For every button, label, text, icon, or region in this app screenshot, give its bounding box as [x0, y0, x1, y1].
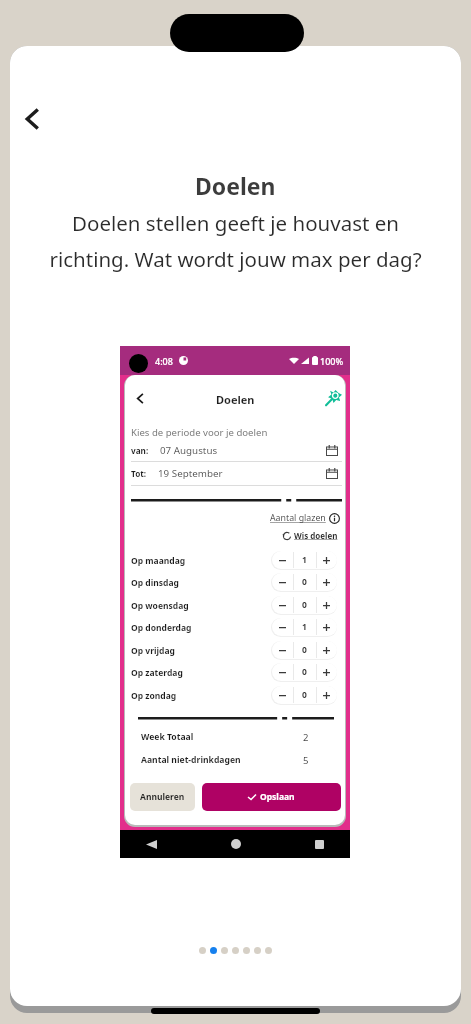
staticText: Doelen	[195, 170, 276, 201]
button[interactable]: Pin	[324, 388, 342, 406]
staticText: Annuleren	[140, 791, 185, 803]
button[interactable]: Increase Op dinsdag	[316, 573, 337, 591]
button[interactable]: Back	[133, 391, 147, 405]
staticText: 4:08	[155, 355, 173, 367]
other: Recents	[315, 840, 324, 849]
button[interactable]: Decrease Op zondag	[272, 686, 293, 704]
staticText: 0	[302, 666, 307, 678]
staticText: Tot:	[131, 468, 147, 479]
button[interactable]: Decrease Op dinsdag	[272, 573, 293, 591]
staticText: Doelen stellen geeft je houvast en richt…	[49, 209, 422, 273]
button[interactable]: Back	[13, 99, 53, 139]
staticText: Aantal glazen	[270, 512, 326, 524]
staticText: 1	[302, 621, 307, 633]
button[interactable]: Decrease Op zaterdag	[272, 663, 293, 681]
staticText: 1	[302, 554, 307, 566]
staticText: Op vrijdag	[131, 645, 175, 657]
button[interactable]: Annuleren	[130, 783, 195, 811]
staticText: 2	[303, 731, 309, 744]
staticText: Opslaan	[260, 791, 295, 803]
button[interactable]: Opslaan	[202, 783, 341, 811]
button[interactable]: Decrease Op woensdag	[272, 596, 293, 614]
staticText: 0	[302, 644, 307, 656]
button[interactable]: Increase Op donderdag	[316, 618, 337, 636]
staticText: Op maandag	[131, 555, 186, 567]
staticText: Aantal niet-drinkdagen	[141, 754, 241, 766]
staticText: Doelen	[216, 392, 255, 407]
button[interactable]: Increase Op zaterdag	[316, 663, 337, 681]
button[interactable]: Decrease Op donderdag	[272, 618, 293, 636]
staticText: 100%	[320, 355, 344, 367]
button[interactable]: Decrease Op maandag	[272, 551, 293, 569]
button[interactable]: Increase Op zondag	[316, 686, 337, 704]
staticText: Op zondag	[131, 690, 177, 702]
staticText: Op woensdag	[131, 600, 189, 612]
staticText: van:	[131, 445, 149, 456]
button[interactable]: Increase Op maandag	[316, 551, 337, 569]
button[interactable]: Wis doelen	[282, 530, 338, 541]
staticText: 0	[302, 689, 307, 701]
staticText: Week Totaal	[141, 731, 194, 743]
button[interactable]: Increase Op vrijdag	[316, 641, 337, 659]
staticText: 5	[303, 754, 309, 767]
button[interactable]: Aantal glazen	[270, 512, 340, 524]
other: Back	[146, 839, 157, 850]
button[interactable]: Pick date	[326, 444, 338, 457]
button[interactable]: Pick date	[326, 467, 338, 480]
staticText: Kies de periode voor je doelen	[131, 426, 268, 439]
staticText: Op donderdag	[131, 622, 192, 634]
other: Home	[231, 839, 241, 849]
staticText: Op dinsdag	[131, 577, 179, 589]
staticText: Op zaterdag	[131, 667, 183, 679]
button[interactable]: Increase Op woensdag	[316, 596, 337, 614]
staticText: 19 September	[158, 467, 223, 480]
button[interactable]: Decrease Op vrijdag	[272, 641, 293, 659]
staticText: 0	[302, 576, 307, 588]
staticText: 07 Augustus	[160, 444, 218, 457]
staticText: 0	[302, 599, 307, 611]
staticText: Wis doelen	[294, 530, 338, 541]
